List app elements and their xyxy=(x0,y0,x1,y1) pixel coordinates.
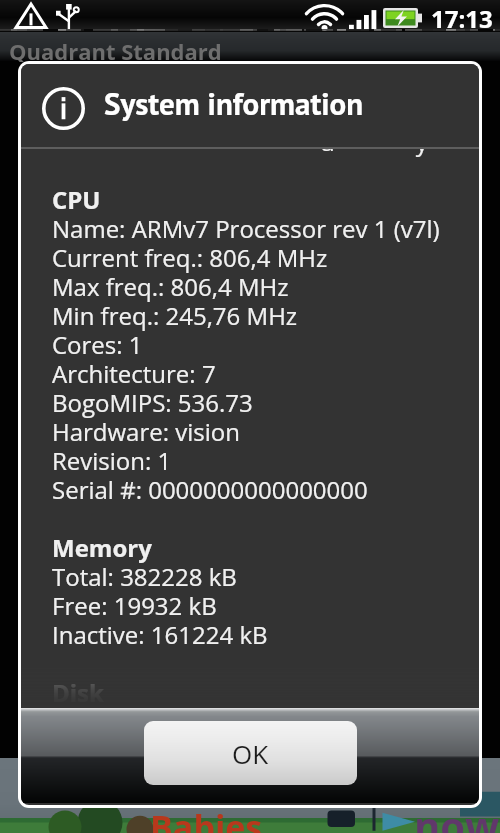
button[interactable]: OK xyxy=(144,721,357,785)
staticText: Quadrant Standard xyxy=(9,36,222,66)
staticText: OK xyxy=(232,736,269,771)
staticText: Babies xyxy=(150,804,263,833)
staticText: u y CPU Name: ARMv7 Processor rev 1 (v7l… xyxy=(52,149,479,708)
staticText: System information xyxy=(104,83,364,123)
staticText: now xyxy=(414,798,500,833)
staticText: 17:13 xyxy=(431,2,493,34)
